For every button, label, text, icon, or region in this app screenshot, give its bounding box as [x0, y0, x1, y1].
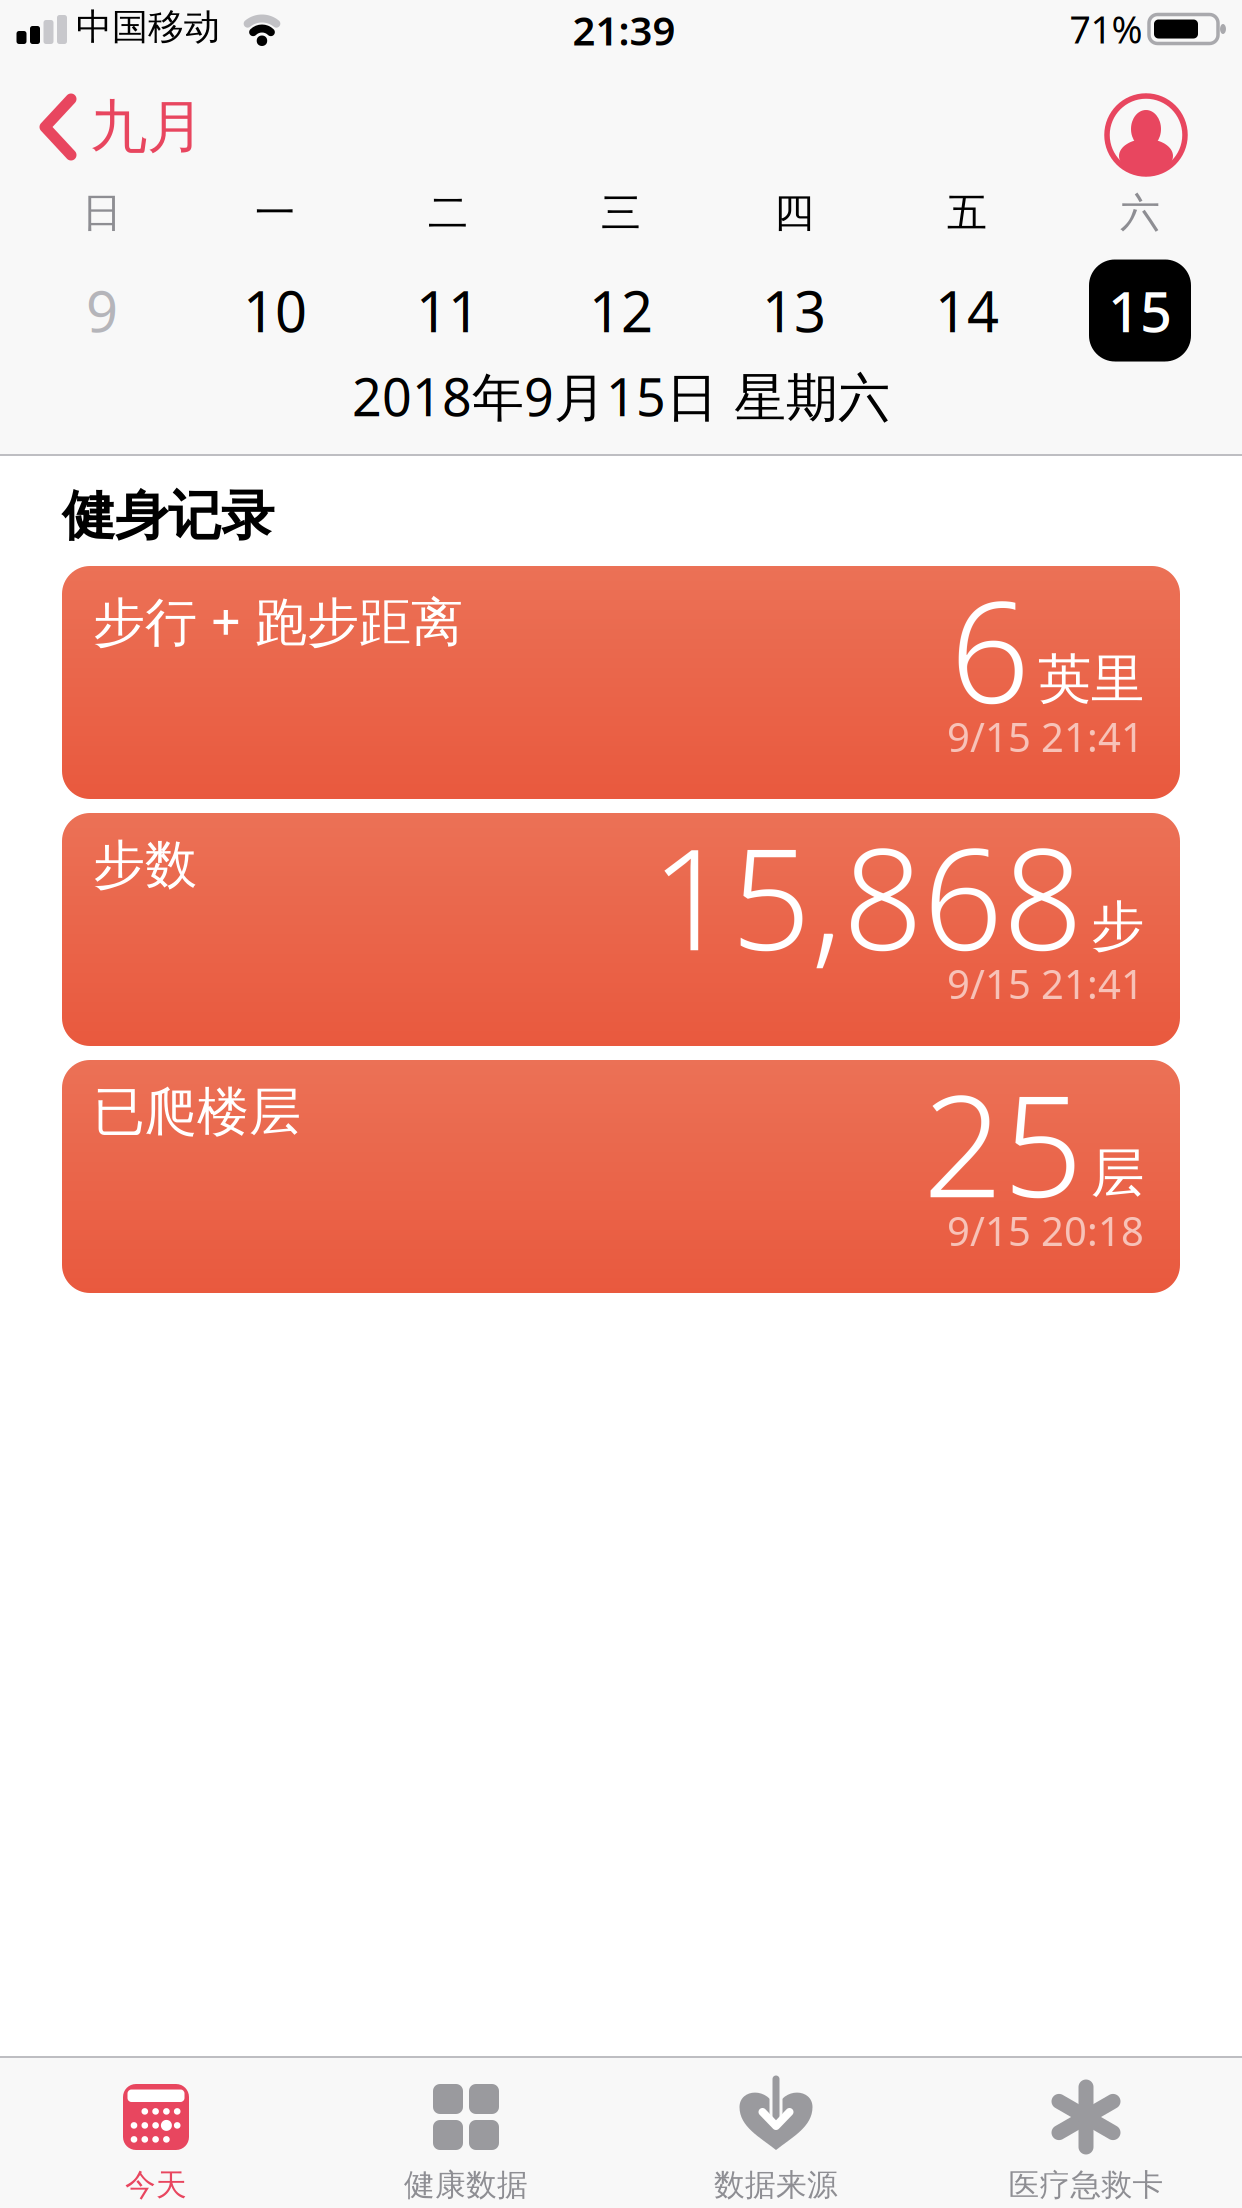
staticText: 六 — [1120, 188, 1160, 237]
staticText: 五 — [947, 188, 987, 237]
staticText: 步 — [1091, 893, 1144, 959]
staticText: 71% — [1069, 4, 1142, 54]
staticText: 九月 — [90, 92, 204, 162]
button[interactable]: 医疗急救卡 — [931, 2056, 1241, 2208]
button[interactable]: 10 — [205, 258, 345, 362]
staticText: 步数 — [93, 833, 197, 897]
staticText: 数据来源 — [714, 2166, 838, 2204]
button[interactable]: 步数 — [62, 813, 1180, 1046]
staticText: 今天 — [125, 2166, 187, 2204]
button[interactable]: 今天 — [1, 2056, 311, 2208]
button[interactable]: 健康数据 — [311, 2056, 621, 2208]
staticText: 12 — [589, 273, 653, 348]
staticText: 21:39 — [572, 3, 675, 56]
staticText: 英里 — [1038, 646, 1144, 712]
staticText: 11 — [416, 273, 480, 348]
staticText: 医疗急救卡 — [1008, 2166, 1163, 2204]
staticText: 10 — [243, 273, 307, 348]
staticText: 9/15 21:41 — [947, 957, 1144, 1010]
staticText: 9 — [86, 273, 118, 348]
staticText: 2018年9月15日 星期六 — [352, 361, 890, 431]
staticText: 层 — [1091, 1140, 1144, 1206]
staticText: 15 — [1108, 273, 1172, 348]
staticText: 步行 + 跑步距离 — [93, 586, 463, 655]
staticText: 四 — [774, 188, 814, 237]
staticText: 三 — [601, 188, 641, 237]
button[interactable]: 步行 + 跑步距离 — [62, 566, 1180, 799]
staticText: 9/15 20:18 — [947, 1204, 1144, 1257]
staticText: 14 — [935, 273, 999, 348]
staticText: 日 — [82, 188, 122, 237]
staticText: 健康数据 — [404, 2166, 528, 2204]
staticText: 6 — [950, 556, 1030, 742]
staticText: 健身记录 — [62, 483, 274, 549]
button[interactable]: 9 — [32, 258, 172, 362]
staticText: 中国移动 — [76, 5, 220, 49]
staticText: 一 — [255, 188, 295, 237]
staticText: 15,868 — [651, 803, 1083, 989]
button[interactable] — [1103, 92, 1185, 174]
staticText: 13 — [762, 273, 826, 348]
staticText: 9/15 21:41 — [947, 710, 1144, 763]
staticText: 二 — [428, 188, 468, 237]
staticText: 25 — [923, 1050, 1083, 1236]
button[interactable]: 14 — [897, 258, 1037, 362]
button[interactable]: 已爬楼层 — [62, 1060, 1180, 1293]
button[interactable]: 15 — [1070, 258, 1210, 362]
staticText: 已爬楼层 — [93, 1080, 301, 1144]
button[interactable]: 12 — [551, 258, 691, 362]
button[interactable]: 11 — [378, 258, 518, 362]
button[interactable]: 数据来源 — [621, 2056, 931, 2208]
button[interactable]: 九月 — [30, 82, 210, 172]
button[interactable]: 13 — [724, 258, 864, 362]
